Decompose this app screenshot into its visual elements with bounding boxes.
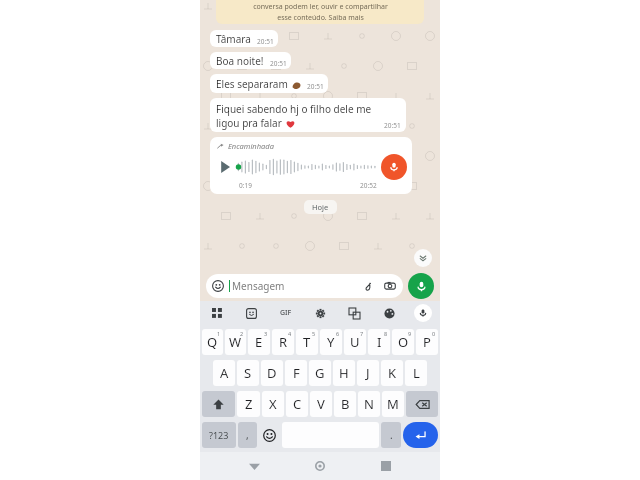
staticText: 0 bbox=[432, 330, 436, 337]
button[interactable]: Voz bbox=[414, 304, 432, 322]
button[interactable]: Gravar bbox=[381, 154, 407, 180]
button[interactable]: Z bbox=[237, 391, 260, 417]
button[interactable]: T bbox=[296, 329, 318, 355]
button[interactable]: N bbox=[358, 391, 380, 417]
button[interactable]: J bbox=[357, 360, 379, 386]
button[interactable]: B bbox=[334, 391, 356, 417]
staticText: M bbox=[387, 395, 399, 413]
button[interactable]: W bbox=[225, 329, 246, 355]
button[interactable]: F bbox=[285, 360, 307, 386]
button[interactable]: Q bbox=[202, 329, 223, 355]
button[interactable]: Stickers bbox=[242, 304, 260, 322]
button[interactable]: Voltar bbox=[242, 454, 266, 478]
staticText: P bbox=[423, 333, 431, 351]
staticText: R bbox=[279, 333, 288, 351]
button[interactable]: X bbox=[262, 391, 284, 417]
staticText: S bbox=[244, 364, 252, 382]
button[interactable]: Tema bbox=[380, 304, 398, 322]
staticText: J bbox=[366, 364, 370, 382]
staticText: V bbox=[317, 395, 325, 413]
staticText: Boa noite! bbox=[216, 54, 264, 68]
staticText: Y bbox=[327, 333, 335, 351]
staticText: 6 bbox=[336, 330, 340, 337]
button[interactable]: Gravar áudio bbox=[408, 273, 434, 299]
staticText: 4 bbox=[288, 330, 292, 337]
staticText: 9 bbox=[408, 330, 412, 337]
button[interactable]: G bbox=[309, 360, 331, 386]
button[interactable]: Apagar bbox=[406, 391, 438, 417]
button[interactable]: Emoji bbox=[259, 422, 280, 448]
button[interactable]: M bbox=[382, 391, 404, 417]
staticText: 20:51 bbox=[257, 37, 274, 46]
button[interactable]: P bbox=[416, 329, 438, 355]
staticText: 2 bbox=[240, 330, 244, 337]
button[interactable]: U bbox=[344, 329, 366, 355]
button[interactable]: Início bbox=[308, 454, 332, 478]
button[interactable]: V bbox=[310, 391, 332, 417]
button[interactable]: Shift bbox=[202, 391, 235, 417]
staticText: 3 bbox=[264, 330, 268, 337]
button[interactable]: Anexar bbox=[361, 279, 375, 293]
button[interactable]: I bbox=[368, 329, 390, 355]
button[interactable]: Enter bbox=[403, 422, 438, 448]
button[interactable]: Boa noite! bbox=[210, 52, 291, 69]
button[interactable]: Fiquei sabendo hj o filho dele me bbox=[210, 98, 406, 132]
button[interactable]: Encaminhada bbox=[210, 137, 412, 194]
staticText: Q bbox=[207, 333, 218, 351]
button[interactable]: conversa podem ler, ouvir e compartilhar bbox=[216, 0, 424, 24]
button[interactable]: A bbox=[213, 360, 235, 386]
staticText: , bbox=[246, 428, 249, 442]
button[interactable]: Câmera bbox=[383, 279, 397, 293]
staticText: E bbox=[255, 333, 263, 351]
staticText: 5 bbox=[312, 330, 316, 337]
staticText: 1 bbox=[217, 330, 221, 337]
button[interactable]: Rolar para baixo bbox=[414, 249, 432, 267]
staticText: T bbox=[303, 333, 311, 351]
staticText: Fiquei sabendo hj o filho dele me bbox=[216, 102, 372, 116]
staticText: Z bbox=[245, 395, 253, 413]
staticText: 20:51 bbox=[384, 121, 401, 130]
button[interactable]: Hoje bbox=[304, 200, 337, 214]
button[interactable]: K bbox=[381, 360, 403, 386]
button[interactable]: Configurações bbox=[311, 304, 329, 322]
button[interactable]: Reproduzir bbox=[217, 159, 233, 175]
button[interactable]: L bbox=[405, 360, 427, 386]
button[interactable]: S bbox=[237, 360, 259, 386]
button[interactable]: Ponto bbox=[381, 422, 401, 448]
staticText: 20:52 bbox=[360, 181, 377, 190]
staticText: ?123 bbox=[209, 429, 229, 441]
button[interactable]: E bbox=[248, 329, 270, 355]
staticText: conversa podem ler, ouvir e compartilhar bbox=[253, 2, 388, 12]
button[interactable]: Recentes bbox=[374, 454, 398, 478]
staticText: C bbox=[293, 395, 302, 413]
staticText: B bbox=[341, 395, 350, 413]
staticText: 20:51 bbox=[270, 59, 287, 68]
button[interactable]: R bbox=[272, 329, 294, 355]
staticText: 20:51 bbox=[307, 82, 324, 91]
button[interactable]: Y bbox=[320, 329, 342, 355]
button[interactable]: C bbox=[286, 391, 308, 417]
button[interactable]: D bbox=[261, 360, 283, 386]
button[interactable]: Apps bbox=[208, 304, 226, 322]
button[interactable]: O bbox=[392, 329, 414, 355]
staticText: D bbox=[267, 364, 277, 382]
staticText: I bbox=[377, 333, 382, 351]
staticText: Encaminhada bbox=[228, 141, 274, 151]
staticText: 0:19 bbox=[239, 181, 252, 190]
button[interactable]: Vírgula bbox=[238, 422, 257, 448]
staticText: H bbox=[339, 364, 349, 382]
staticText: A bbox=[220, 364, 229, 382]
staticText: 8 bbox=[384, 330, 388, 337]
button[interactable]: ?123 bbox=[202, 422, 236, 448]
staticText: Eles separaram bbox=[216, 77, 288, 91]
button[interactable]: H bbox=[333, 360, 355, 386]
staticText: U bbox=[350, 333, 360, 351]
staticText: N bbox=[364, 395, 374, 413]
button[interactable]: Traduzir bbox=[345, 304, 363, 322]
button[interactable]: GIF bbox=[277, 304, 295, 322]
button[interactable]: Eles separaram bbox=[210, 74, 328, 93]
button[interactable]: Tâmara bbox=[210, 30, 278, 47]
staticText: Tâmara bbox=[216, 32, 251, 46]
button[interactable]: Mensagem bbox=[206, 274, 403, 298]
